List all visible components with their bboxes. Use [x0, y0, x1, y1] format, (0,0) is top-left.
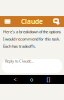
staticText: I would recommend for this task. [3, 36, 60, 42]
staticText: Reply to Claude... [5, 58, 34, 64]
button[interactable]: New chat [52, 17, 61, 26]
staticText: o [30, 76, 33, 83]
staticText: < [13, 76, 16, 83]
staticText: Claude [21, 17, 43, 26]
button[interactable]: Menu [3, 17, 12, 26]
staticText: Each has tradeoffs. [3, 44, 36, 49]
staticText: Here's a breakdown of the options [3, 29, 61, 34]
staticText: [] [46, 76, 50, 83]
